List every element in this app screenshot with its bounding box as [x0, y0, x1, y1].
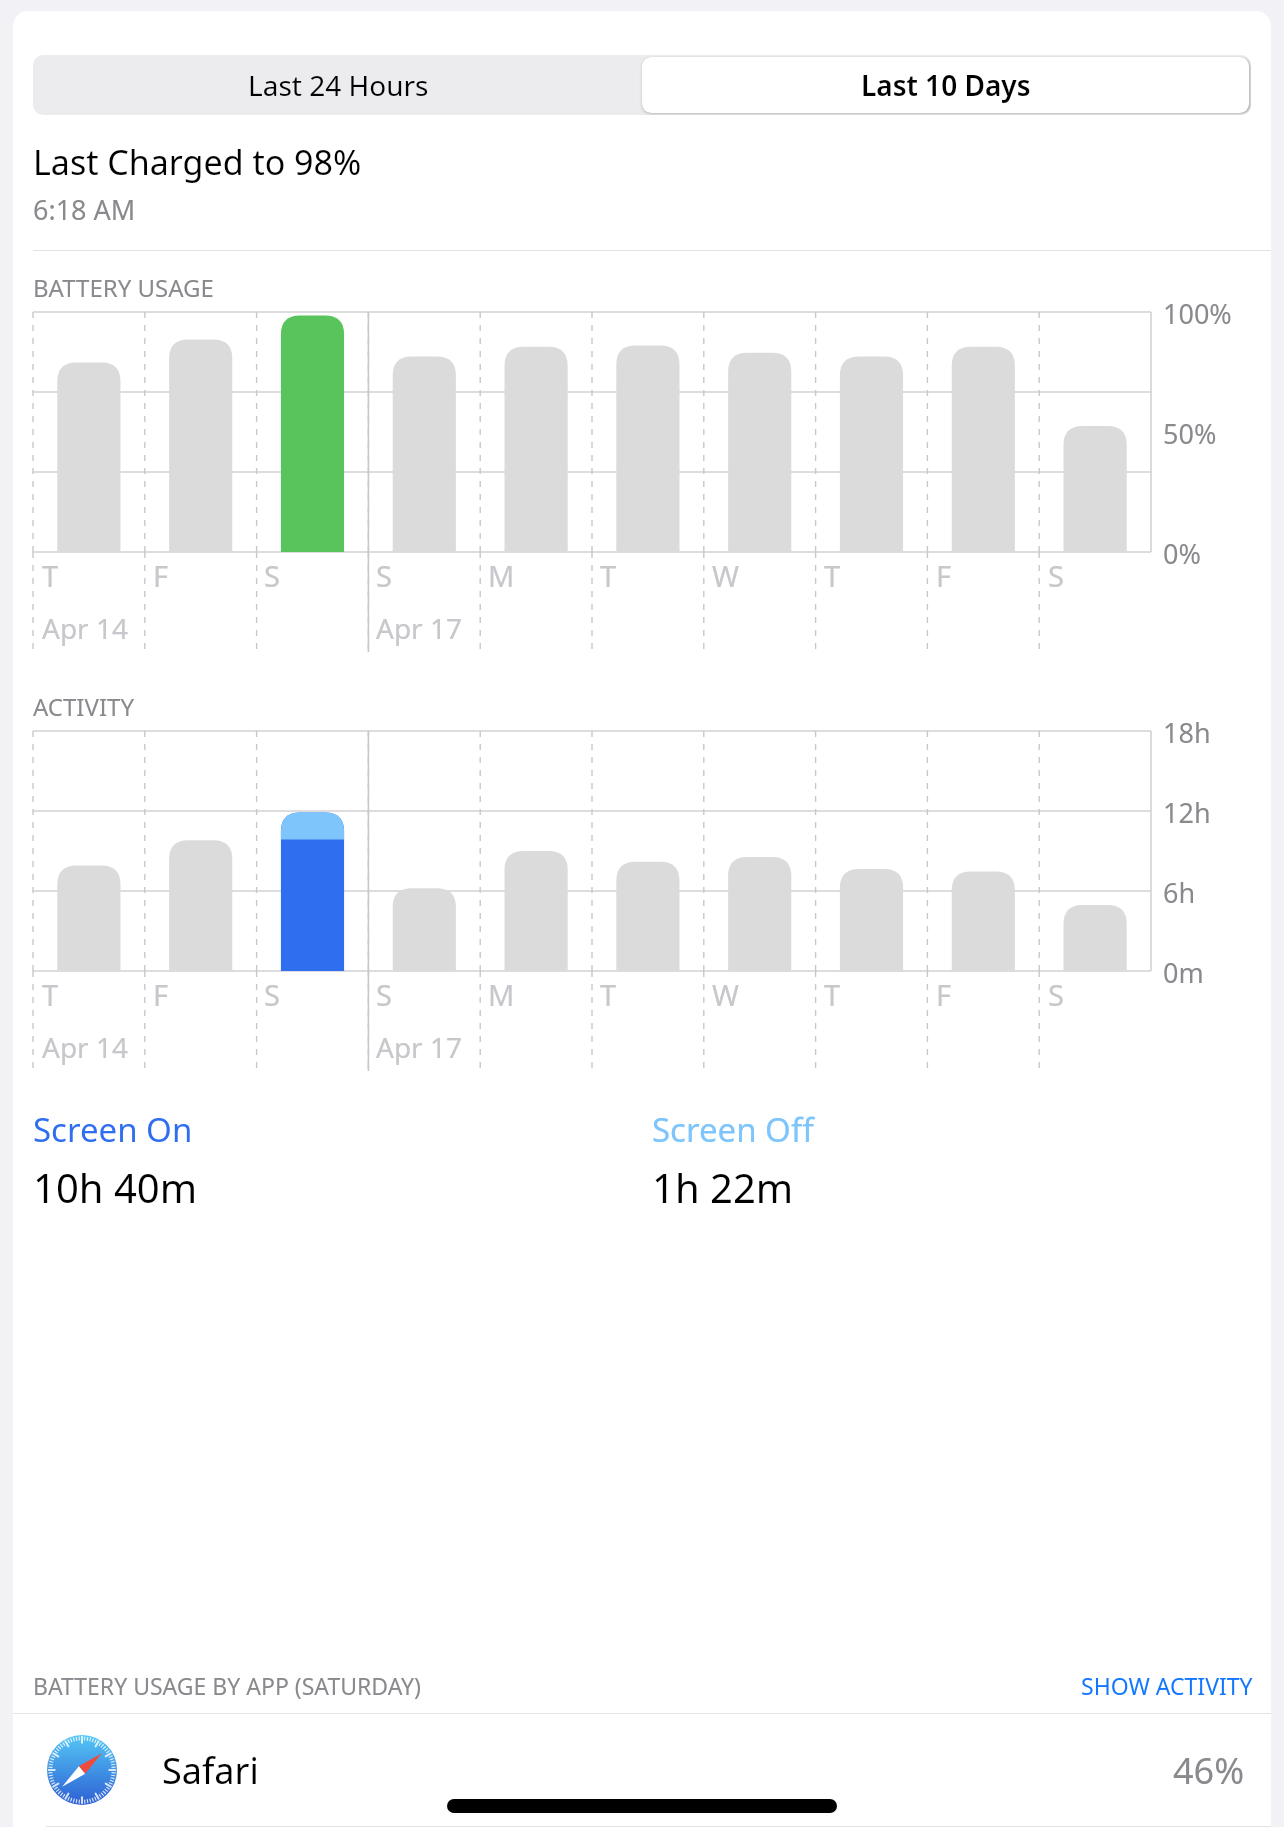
staticText: T: [824, 556, 841, 595]
staticText: 6h: [1163, 874, 1196, 911]
staticText: 1h 22m: [652, 1160, 794, 1214]
staticText: 10h 40m: [33, 1160, 198, 1214]
staticText: Last 24 Hours: [248, 66, 429, 104]
staticText: 50%: [1163, 415, 1217, 452]
staticText: T: [600, 975, 617, 1014]
staticText: F: [936, 556, 952, 595]
staticText: S: [1048, 975, 1064, 1014]
staticText: Screen Off: [652, 1107, 814, 1152]
staticText: Apr 14: [42, 609, 128, 647]
staticText: Apr 17: [376, 609, 462, 647]
button[interactable]: Last 10 Days: [642, 57, 1249, 113]
staticText: Screen On: [33, 1107, 193, 1152]
staticText: 6:18 AM: [33, 191, 136, 228]
staticText: T: [42, 556, 59, 595]
staticText: F: [153, 975, 169, 1014]
staticText: M: [488, 556, 515, 595]
staticText: BATTERY USAGE: [33, 271, 214, 304]
staticText: S: [376, 975, 392, 1014]
staticText: Apr 14: [42, 1028, 128, 1066]
staticText: BATTERY USAGE BY APP (SATURDAY): [33, 1670, 421, 1701]
staticText: Last 10 Days: [861, 66, 1031, 104]
staticText: 12h: [1163, 794, 1211, 831]
button[interactable]: SHOW ACTIVITY: [1081, 1670, 1253, 1701]
other: Safari: [46, 1734, 118, 1806]
staticText: S: [1048, 556, 1064, 595]
staticText: 46%: [1173, 1746, 1245, 1795]
staticText: F: [153, 556, 169, 595]
staticText: 0m: [1163, 954, 1204, 991]
staticText: ACTIVITY: [33, 690, 134, 723]
staticText: S: [376, 556, 392, 595]
staticText: W: [712, 556, 739, 595]
staticText: Apr 17: [376, 1028, 462, 1066]
staticText: 0%: [1163, 535, 1201, 572]
staticText: W: [712, 975, 739, 1014]
staticText: T: [42, 975, 59, 1014]
staticText: S: [264, 975, 280, 1014]
staticText: F: [936, 975, 952, 1014]
staticText: T: [824, 975, 841, 1014]
staticText: M: [488, 975, 515, 1014]
staticText: S: [264, 556, 280, 595]
staticText: T: [600, 556, 617, 595]
staticText: Safari: [162, 1746, 259, 1795]
button[interactable]: Last 24 Hours: [35, 57, 642, 113]
staticText: SHOW ACTIVITY: [1081, 1670, 1253, 1701]
button[interactable]: Safari: [13, 1714, 1271, 1826]
staticText: Last Charged to 98%: [33, 139, 362, 185]
staticText: 100%: [1163, 295, 1232, 332]
staticText: 18h: [1163, 714, 1211, 751]
